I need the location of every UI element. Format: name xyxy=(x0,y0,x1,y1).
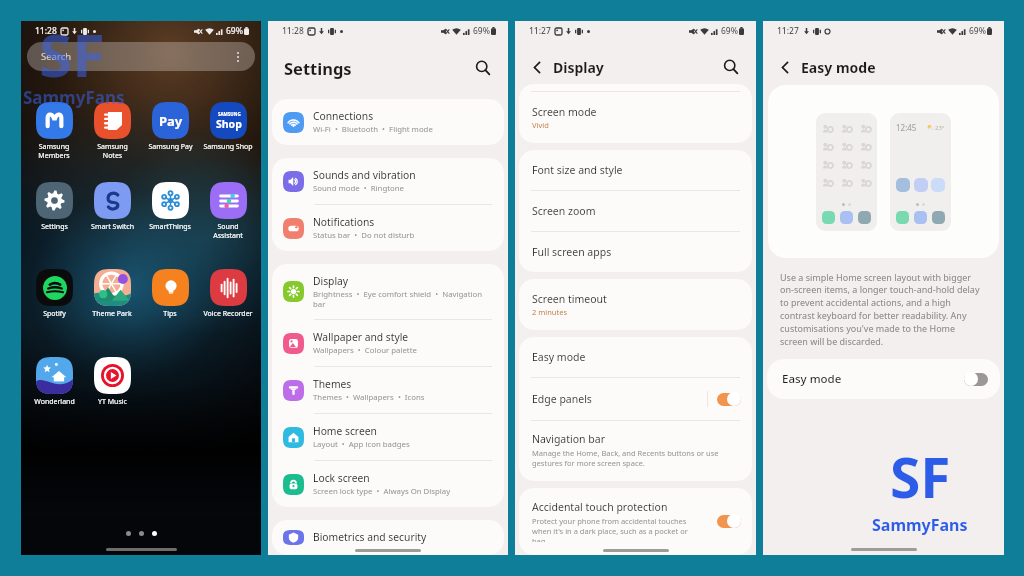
staticText: Samsung Shop xyxy=(203,142,253,152)
button[interactable]: Back xyxy=(775,57,795,77)
staticText: 69% xyxy=(473,25,490,37)
button[interactable]: Easy mode xyxy=(767,359,1000,399)
staticText: Theme Park xyxy=(92,309,132,319)
staticText: Screen timeout xyxy=(532,292,607,306)
button[interactable]: Search apps xyxy=(27,42,255,71)
staticText: SammyFans xyxy=(872,514,968,536)
button[interactable]: Wallpaper and style xyxy=(272,320,504,366)
staticText: Pay xyxy=(159,112,183,130)
staticText: 69% xyxy=(721,25,738,37)
button[interactable]: Spotify xyxy=(25,269,83,319)
button[interactable]: More options xyxy=(233,48,243,66)
button[interactable]: Edge panels xyxy=(519,378,752,420)
staticText: Vivid xyxy=(532,120,549,130)
button[interactable]: Notifications xyxy=(272,205,504,251)
button[interactable]: Biometrics and security xyxy=(272,520,504,555)
button[interactable]: Accidental touch protection xyxy=(519,488,752,555)
staticText: Accidental touch protection xyxy=(532,500,668,514)
staticText: Easy mode xyxy=(782,371,842,387)
staticText: 69% xyxy=(226,25,243,37)
staticText: Wallpaper and style xyxy=(313,330,409,344)
staticText: SF xyxy=(39,13,105,95)
button[interactable]: Screen zoom xyxy=(519,191,752,231)
button[interactable]: Tips xyxy=(141,269,199,319)
staticText: Full screen apps xyxy=(532,245,612,259)
button[interactable]: Home screen xyxy=(272,414,504,460)
button[interactable]: Samsung Shop xyxy=(199,102,257,152)
staticText: 2 minutes xyxy=(532,307,567,317)
staticText: Manage the Home, Back, and Recents butto… xyxy=(532,448,739,468)
staticText: Voice Recorder xyxy=(203,309,253,319)
staticText: 11:27 xyxy=(529,25,551,37)
staticText: Home screen xyxy=(313,424,377,438)
staticText: Notifications xyxy=(313,215,375,229)
button[interactable]: Back xyxy=(527,57,547,77)
staticText: Screen lock type • Always On Display xyxy=(313,486,451,497)
staticText: Biometrics and security xyxy=(313,530,427,544)
staticText: Easy mode xyxy=(801,58,876,77)
button[interactable]: Easy mode xyxy=(519,337,752,377)
button[interactable]: Smart Switch xyxy=(83,182,141,232)
staticText: Screen zoom xyxy=(532,204,596,218)
button[interactable]: Samsung Pay xyxy=(141,102,199,152)
button[interactable]: Sounds and vibration xyxy=(272,158,504,204)
staticText: Spotify xyxy=(43,309,66,319)
staticText: Sound Assistant xyxy=(213,222,243,240)
button[interactable]: Voice Recorder xyxy=(199,269,257,319)
button[interactable]: Samsung Notes xyxy=(83,102,141,160)
button[interactable]: Theme Park xyxy=(83,269,141,319)
staticText: Smart Switch xyxy=(91,222,134,232)
button[interactable]: Sound Assistant xyxy=(199,182,257,240)
button[interactable]: Connections xyxy=(272,99,504,145)
staticText: Sounds and vibration xyxy=(313,168,416,182)
button[interactable]: Screen timeout xyxy=(519,279,752,330)
staticText: Samsung Notes xyxy=(97,142,128,160)
button[interactable]: SmartThings xyxy=(141,182,199,232)
staticText: Wi-Fi • Bluetooth • Flight mode xyxy=(313,124,433,135)
staticText: 11:27 xyxy=(777,25,799,37)
button[interactable]: Search xyxy=(472,57,494,79)
staticText: Connections xyxy=(313,109,374,123)
staticText: Themes • Wallpapers • Icons xyxy=(313,392,425,403)
button[interactable]: Navigation bar xyxy=(519,421,752,481)
button[interactable]: YT Music xyxy=(83,357,141,407)
staticText: Font size and style xyxy=(532,163,623,177)
staticText: Screen mode xyxy=(532,105,597,119)
staticText: Samsung Pay xyxy=(148,142,193,152)
staticText: 23° xyxy=(935,124,945,132)
staticText: Sound mode • Ringtone xyxy=(313,183,404,194)
button[interactable]: Easy mode Home screen preview xyxy=(890,113,951,231)
staticText: 12:45 xyxy=(896,122,917,133)
staticText: Themes xyxy=(313,377,352,391)
button[interactable]: Font size and style xyxy=(519,150,752,190)
staticText: SF xyxy=(890,439,951,514)
button[interactable]: Wonderland xyxy=(25,357,83,407)
button[interactable]: Settings xyxy=(25,182,83,232)
button[interactable]: Themes xyxy=(272,367,504,413)
staticText: Lock screen xyxy=(313,471,370,485)
button[interactable]: Display xyxy=(272,264,504,319)
staticText: 69% xyxy=(969,25,986,37)
staticText: Wallpapers • Colour palette xyxy=(313,345,417,356)
staticText: SammyFans xyxy=(23,86,125,109)
button[interactable]: Samsung Members xyxy=(25,102,83,160)
staticText: Settings xyxy=(284,57,352,79)
staticText: Brightness • Eye comfort shield • Naviga… xyxy=(313,289,488,309)
staticText: Edge panels xyxy=(532,392,592,406)
staticText: YT Music xyxy=(98,397,127,407)
staticText: Samsung Members xyxy=(38,142,70,160)
staticText: Protect your phone from accidental touch… xyxy=(532,516,691,542)
button[interactable]: Standard Home screen preview xyxy=(816,113,877,231)
button[interactable]: Lock screen xyxy=(272,461,504,507)
staticText: Search xyxy=(41,50,72,63)
staticText: Shop xyxy=(216,117,242,131)
staticText: Settings xyxy=(41,222,68,232)
staticText: Navigation bar xyxy=(532,432,606,446)
button[interactable]: Screen mode xyxy=(519,92,752,143)
staticText: Layout • App icon badges xyxy=(313,439,410,450)
button[interactable]: Full screen apps xyxy=(519,232,752,272)
staticText: Wonderland xyxy=(34,397,75,407)
button[interactable]: Search xyxy=(720,56,742,78)
staticText: Easy mode xyxy=(532,350,586,364)
staticText: Display xyxy=(313,274,349,288)
